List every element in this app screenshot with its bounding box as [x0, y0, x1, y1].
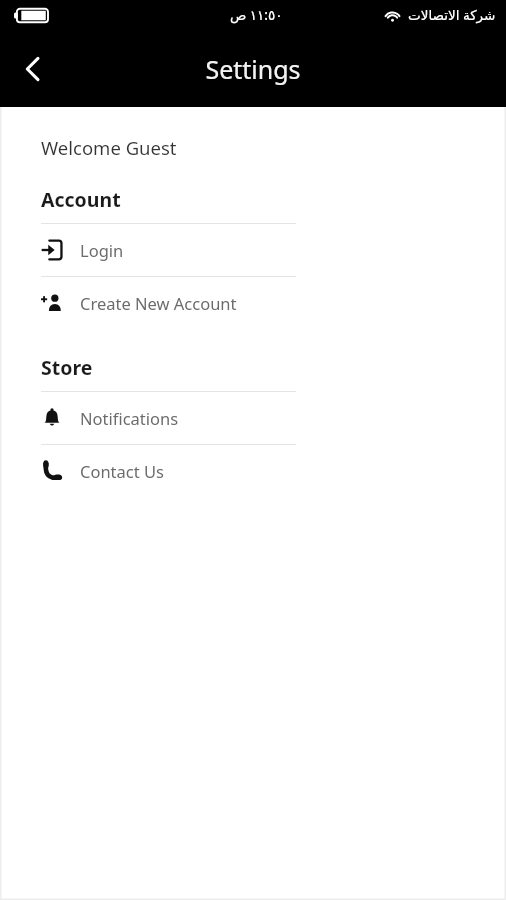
staticText: Create New Account	[80, 292, 237, 314]
staticText: Store	[41, 354, 93, 381]
staticText: Login	[80, 239, 124, 261]
staticText: شركة الاتصالات	[408, 6, 496, 24]
staticText: Account	[41, 186, 121, 213]
staticText: Contact Us	[80, 460, 164, 482]
button[interactable]: Create New Account	[41, 277, 506, 329]
staticText: ١١:٥٠ ص	[230, 6, 283, 24]
button[interactable]: Back	[8, 45, 56, 93]
button[interactable]: Notifications	[41, 392, 506, 444]
button[interactable]: Login	[41, 224, 506, 276]
staticText: Settings	[205, 52, 301, 86]
staticText: Welcome Guest	[41, 135, 177, 160]
button[interactable]: Contact Us	[41, 445, 506, 497]
staticText: Notifications	[80, 407, 179, 429]
